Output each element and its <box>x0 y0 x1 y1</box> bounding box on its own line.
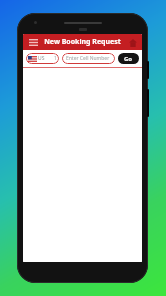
button[interactable]: US <box>26 53 59 64</box>
button[interactable]: Go <box>118 53 139 64</box>
staticText: New Booking Request <box>44 37 121 47</box>
staticText: Go <box>124 55 133 63</box>
button[interactable]: Open navigation menu <box>26 35 40 49</box>
staticText: US <box>38 55 45 62</box>
button[interactable]: Enter Cell Number <box>62 53 115 64</box>
button[interactable]: Home <box>126 36 139 49</box>
staticText: 1 <box>54 55 57 62</box>
staticText: Enter Cell Number <box>66 55 110 62</box>
